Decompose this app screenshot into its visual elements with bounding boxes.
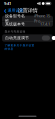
button[interactable]: ‹ (2, 7, 25, 14)
button[interactable]: 了解更多关于显示设置的信息 (4, 43, 34, 51)
staticText: 设置详情 (17, 7, 37, 14)
staticText: iPhone 15 Pro (34, 13, 50, 24)
staticText: 自动亮度调节 (5, 36, 29, 40)
staticText: ‹ (4, 5, 7, 16)
staticText: 通用设置 (8, 8, 24, 13)
staticText: 显示与亮度选项 (4, 30, 25, 33)
staticText: 9:41 (4, 1, 11, 6)
staticText: 17.4.1 (40, 21, 50, 27)
button[interactable]: 设备型号名称 (2, 16, 53, 21)
staticText: 系统版本号 (5, 22, 25, 26)
button[interactable]: 自动亮度调节 (2, 34, 53, 42)
staticText: 了解更多关于显示设置的信息 (4, 44, 34, 50)
staticText: 设备型号名称 (5, 13, 25, 23)
button[interactable]: 系统版本号 (2, 21, 53, 27)
